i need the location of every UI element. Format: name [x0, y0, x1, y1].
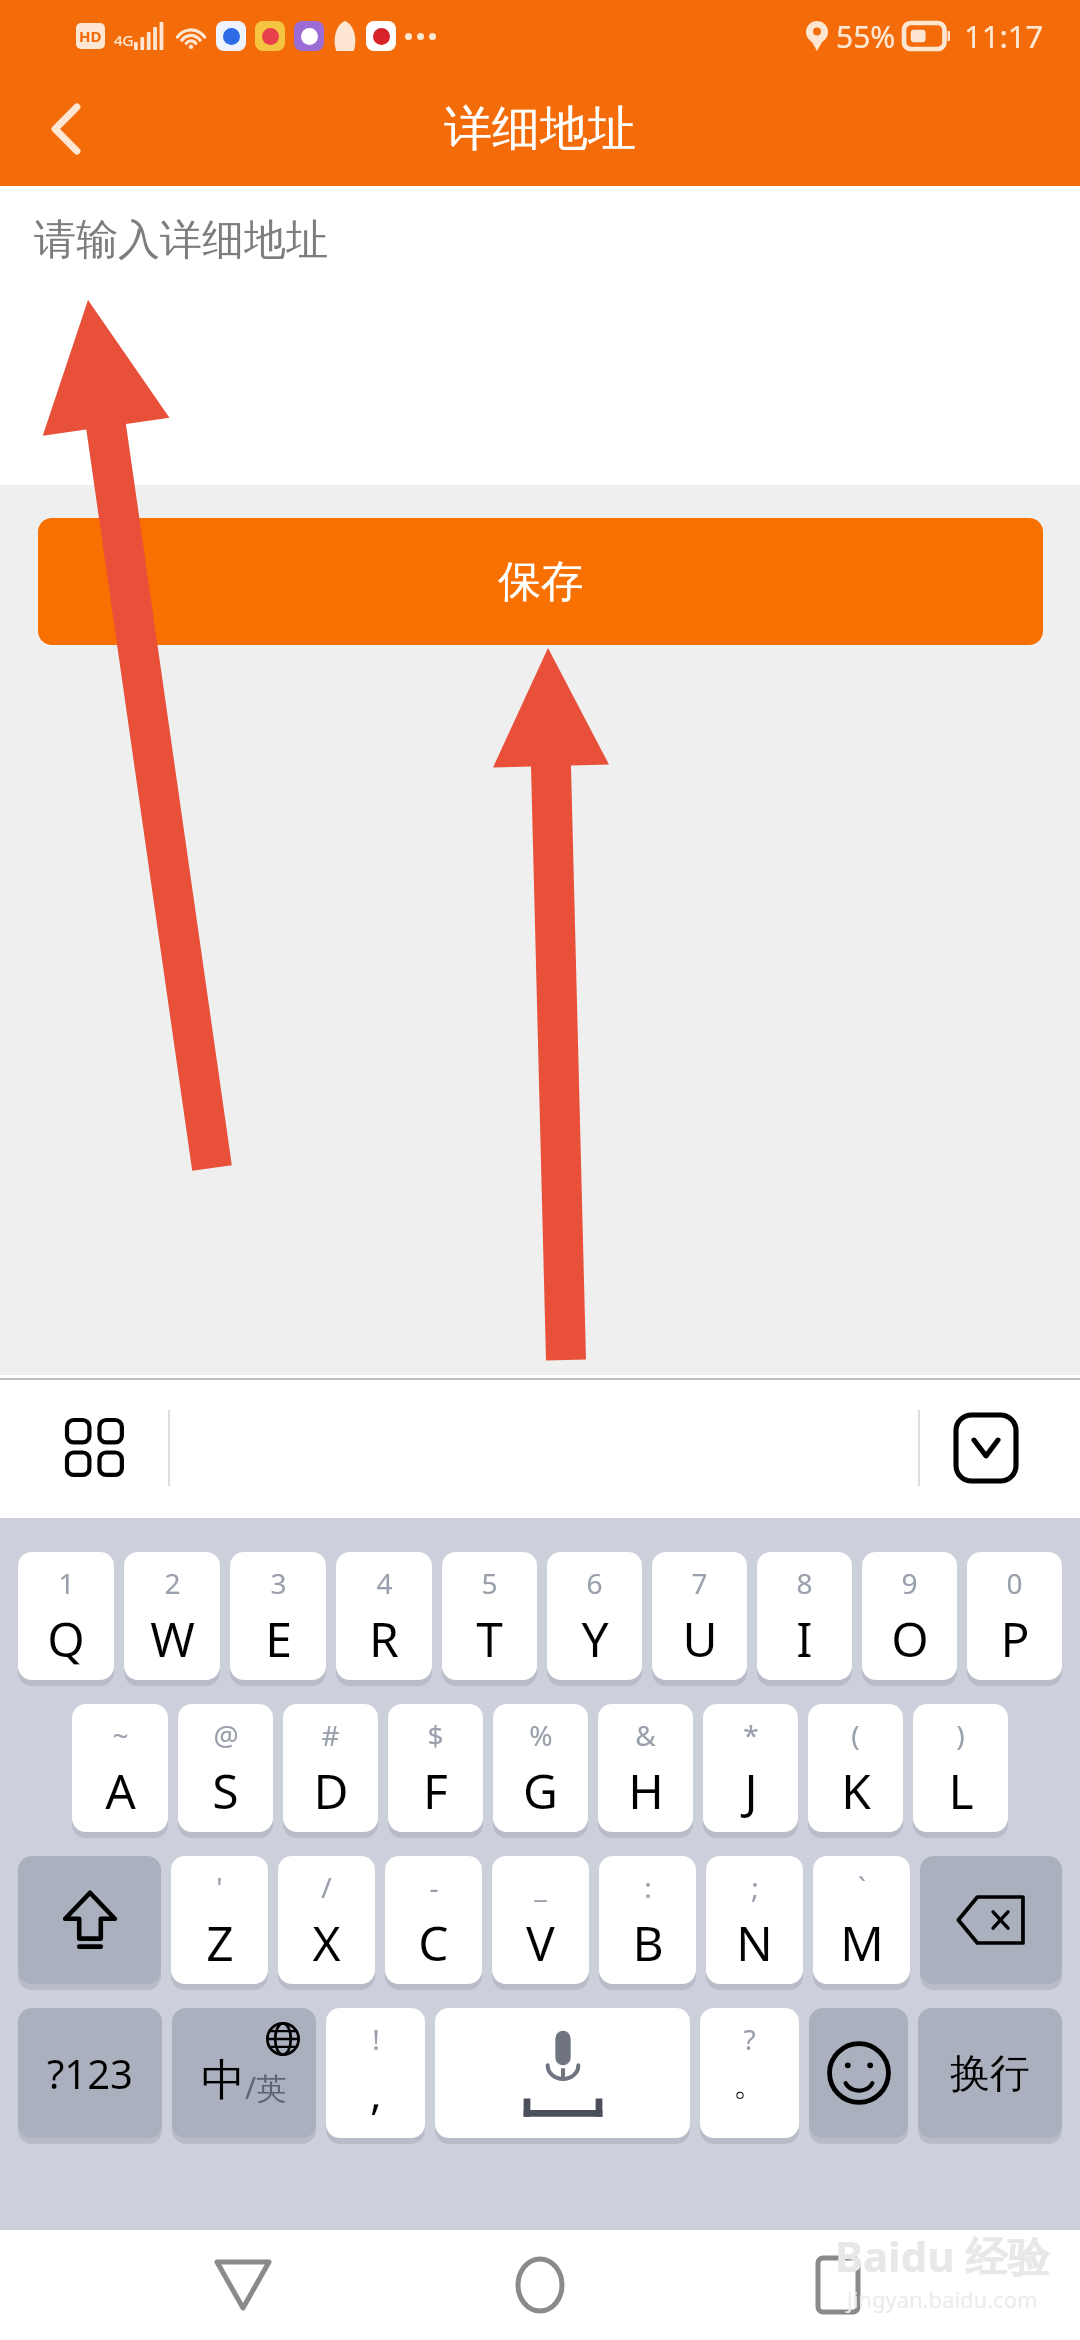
staticText: * — [743, 1716, 759, 1754]
staticText: 4 — [376, 1564, 393, 1602]
button[interactable]: $ — [388, 1704, 483, 1832]
staticText: ?123 — [47, 2046, 133, 2100]
button[interactable]: Space — [435, 2008, 690, 2138]
staticText: 5 — [481, 1564, 498, 1602]
staticText: L — [948, 1758, 974, 1823]
staticText: 换行 — [950, 2048, 1030, 2098]
staticText: 详细地址 — [444, 99, 636, 159]
staticText: 0 — [1006, 1564, 1023, 1602]
button[interactable]: ' — [171, 1856, 268, 1984]
button[interactable]: 3 — [230, 1552, 326, 1680]
staticText: B — [632, 1910, 664, 1975]
staticText: W — [150, 1606, 195, 1671]
button[interactable]: 6 — [547, 1552, 642, 1680]
staticText: D — [313, 1758, 349, 1823]
staticText: Y — [581, 1606, 609, 1671]
staticText: ' — [216, 1868, 223, 1906]
staticText: Z — [206, 1910, 234, 1975]
staticText: O — [891, 1606, 929, 1671]
staticText: S — [212, 1758, 239, 1823]
button[interactable]: 7 — [652, 1552, 747, 1680]
button[interactable]: @ — [178, 1704, 273, 1832]
staticText: X — [312, 1910, 341, 1975]
staticText: 。 — [733, 2062, 767, 2105]
staticText: 4G — [114, 30, 134, 50]
button[interactable]: - — [385, 1856, 482, 1984]
staticText: A — [105, 1758, 136, 1823]
button[interactable]: 5 — [442, 1552, 537, 1680]
button[interactable]: 0 — [967, 1552, 1062, 1680]
button[interactable]: ( — [808, 1704, 903, 1832]
button[interactable]: 1 — [18, 1552, 114, 1680]
button[interactable]: _ — [492, 1856, 589, 1984]
staticText: , — [370, 2062, 382, 2122]
button[interactable]: Keyboard layouts — [50, 1403, 140, 1493]
button[interactable]: Emoji — [809, 2008, 908, 2138]
staticText: R — [369, 1606, 399, 1671]
button[interactable]: : — [599, 1856, 696, 1984]
staticText: 6 — [586, 1564, 603, 1602]
staticText: M — [840, 1910, 884, 1975]
staticText: Baidu 经验 — [835, 2227, 1050, 2284]
button[interactable]: & — [598, 1704, 693, 1832]
button[interactable]: 2 — [124, 1552, 220, 1680]
staticText: T — [476, 1606, 503, 1671]
button[interactable]: 4 — [336, 1552, 432, 1680]
staticText: P — [1000, 1606, 1030, 1671]
staticText: 2 — [164, 1564, 181, 1602]
staticText: jingyan.baidu.com — [847, 2284, 1038, 2314]
button[interactable]: 请输入详细地址 — [0, 186, 1080, 485]
staticText: ~ — [112, 1716, 129, 1754]
button[interactable]: % — [493, 1704, 588, 1832]
button[interactable]: Shift — [18, 1856, 161, 1984]
button[interactable]: ! — [326, 2008, 425, 2138]
button[interactable]: Hide keyboard — [938, 1400, 1034, 1496]
staticText: /英 — [245, 2067, 287, 2108]
staticText: @ — [213, 1716, 239, 1754]
staticText: ? — [743, 2020, 756, 2058]
staticText: F — [423, 1758, 448, 1823]
staticText: : — [644, 1868, 652, 1906]
button[interactable]: 中 — [172, 2008, 316, 2138]
button[interactable]: * — [703, 1704, 798, 1832]
staticText: 7 — [691, 1564, 708, 1602]
staticText: 9 — [901, 1564, 918, 1602]
staticText: 55% — [836, 16, 896, 57]
button[interactable]: 9 — [862, 1552, 957, 1680]
staticText: - — [429, 1868, 439, 1906]
button[interactable]: Back — [188, 2230, 298, 2340]
staticText: 3 — [270, 1564, 287, 1602]
button[interactable]: # — [283, 1704, 378, 1832]
staticText: 11:17 — [964, 15, 1044, 57]
button[interactable]: ; — [706, 1856, 803, 1984]
staticText: ( — [851, 1716, 860, 1754]
staticText: H — [628, 1758, 664, 1823]
button[interactable]: ? — [700, 2008, 799, 2138]
staticText: C — [418, 1910, 449, 1975]
button[interactable]: ?123 — [18, 2008, 162, 2138]
button[interactable]: Recents — [783, 2230, 893, 2340]
staticText: E — [265, 1606, 292, 1671]
button[interactable]: Back — [22, 85, 110, 173]
staticText: 保存 — [498, 555, 584, 609]
button[interactable]: / — [278, 1856, 375, 1984]
button[interactable]: ) — [913, 1704, 1008, 1832]
staticText: & — [635, 1716, 656, 1754]
staticText: U — [682, 1606, 718, 1671]
staticText: _ — [534, 1868, 547, 1906]
button[interactable]: 换行 — [918, 2008, 1062, 2138]
staticText: ; — [751, 1868, 759, 1906]
staticText: J — [744, 1758, 758, 1823]
staticText: 1 — [58, 1564, 75, 1602]
staticText: ` — [858, 1868, 866, 1906]
button[interactable]: ~ — [72, 1704, 168, 1832]
staticText: ! — [372, 2020, 380, 2058]
staticText: / — [321, 1868, 332, 1906]
button[interactable]: Home — [485, 2230, 595, 2340]
staticText: N — [736, 1910, 773, 1975]
button[interactable]: 保存 — [38, 518, 1043, 645]
button[interactable]: 8 — [757, 1552, 852, 1680]
button[interactable]: ` — [813, 1856, 910, 1984]
button[interactable]: Backspace — [920, 1856, 1062, 1984]
staticText: HD — [79, 26, 102, 46]
